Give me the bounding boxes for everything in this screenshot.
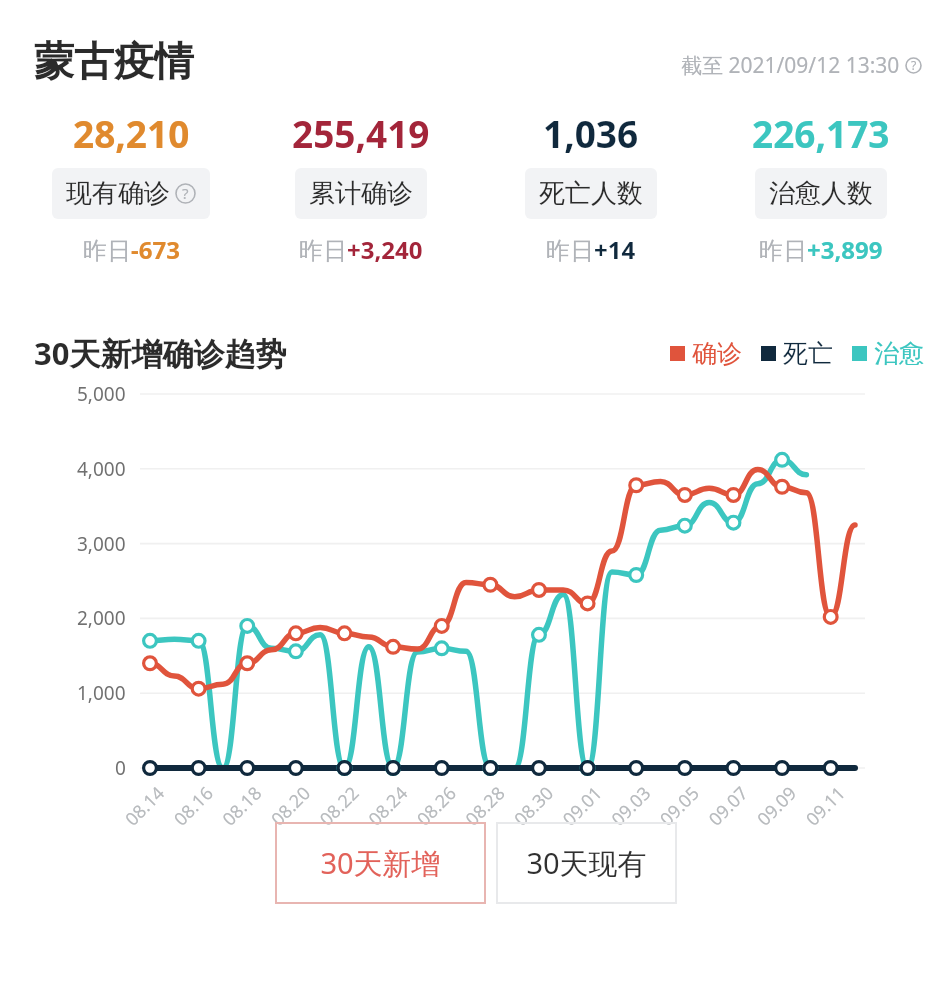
button[interactable]: 30天新增 — [275, 822, 486, 904]
staticText: 确诊 — [692, 338, 742, 369]
button[interactable]: 死亡人数 — [525, 168, 657, 219]
staticText: 255,419 — [292, 108, 430, 158]
staticText: 蒙古疫情 — [34, 36, 194, 86]
staticText: ? — [911, 57, 917, 74]
staticText: 治愈人数 — [769, 177, 873, 210]
button[interactable]: 累计确诊 — [295, 168, 427, 219]
staticText: 30天新增确诊趋势 — [34, 332, 287, 374]
button[interactable]: 现有确诊 — [52, 168, 210, 219]
staticText: 治愈 — [874, 338, 924, 369]
button[interactable]: 30天现有 — [496, 822, 677, 904]
staticText: 28,210 — [73, 108, 190, 158]
staticText: 现有确诊 — [66, 177, 170, 210]
staticText: 截至 2021/09/12 13:30 — [681, 51, 900, 80]
staticText: 30天现有 — [526, 843, 647, 883]
staticText: 1,036 — [543, 108, 639, 158]
staticText: 昨日+14 — [546, 233, 636, 266]
staticText: 昨日-673 — [83, 233, 180, 266]
staticText: 昨日+3,240 — [299, 233, 423, 266]
staticText: 昨日+3,899 — [759, 233, 883, 266]
staticText: 累计确诊 — [309, 177, 413, 210]
staticText: 死亡人数 — [539, 177, 643, 210]
staticText: 226,173 — [752, 108, 890, 158]
staticText: 死亡 — [783, 338, 833, 369]
button[interactable]: 治愈人数 — [755, 168, 887, 219]
staticText: 30天新增 — [320, 843, 441, 883]
staticText: ? — [182, 183, 189, 204]
